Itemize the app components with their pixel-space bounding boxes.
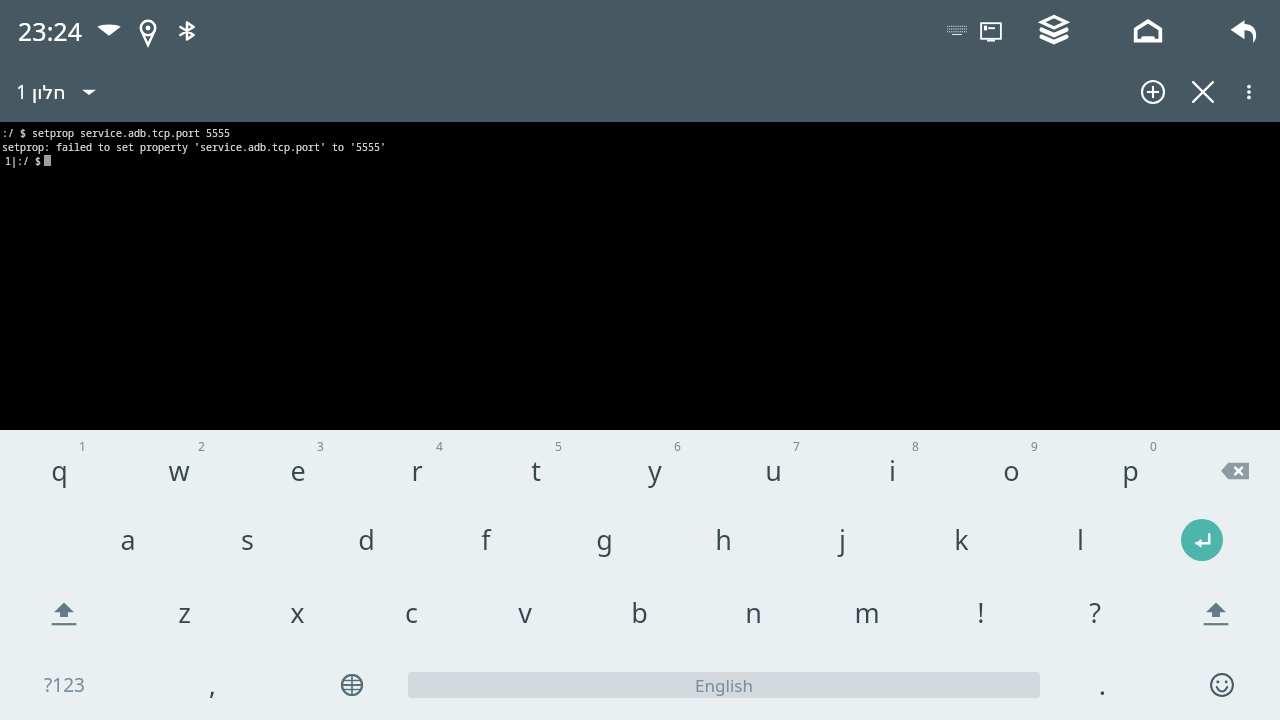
staticText: 5	[555, 438, 562, 454]
staticText: b	[631, 594, 648, 631]
button[interactable]: Bluetooth	[172, 16, 202, 46]
button[interactable]: 7	[714, 430, 833, 503]
staticText: l	[1077, 521, 1084, 558]
staticText: w	[168, 452, 190, 489]
button[interactable]: Change keyboard language	[296, 649, 408, 720]
staticText: v	[518, 594, 532, 631]
button[interactable]: Home	[1126, 9, 1170, 53]
staticText: חלון 1	[16, 79, 66, 105]
staticText: :/ $ setprop service.adb.tcp.port 5555	[2, 126, 230, 140]
button[interactable]: x	[241, 576, 354, 649]
button[interactable]: 4	[357, 430, 476, 503]
staticText: x	[290, 594, 305, 631]
button[interactable]: s	[188, 503, 307, 576]
staticText: .	[1099, 668, 1106, 702]
button[interactable]: Delete	[1190, 430, 1280, 503]
staticText: d	[358, 521, 375, 558]
staticText: y	[648, 452, 662, 489]
button[interactable]: g	[545, 503, 664, 576]
button[interactable]: 2	[119, 430, 238, 503]
staticText: 4	[436, 438, 443, 454]
button[interactable]: !	[924, 576, 1038, 649]
staticText: t	[531, 452, 541, 489]
button[interactable]: d	[307, 503, 426, 576]
staticText: o	[1003, 452, 1020, 489]
button[interactable]: Enter	[1140, 503, 1280, 576]
staticText: 1	[79, 438, 86, 454]
staticText: f	[481, 521, 491, 558]
button[interactable]: חלון 1	[16, 79, 96, 105]
staticText: z	[178, 594, 191, 631]
button[interactable]: ?123	[0, 649, 128, 720]
staticText: 2	[198, 438, 205, 454]
button[interactable]: l	[1021, 503, 1140, 576]
button[interactable]: More options	[1232, 75, 1266, 109]
staticText: p	[1122, 452, 1139, 489]
button[interactable]: 5	[476, 430, 595, 503]
staticText: k	[954, 521, 969, 558]
staticText: 8	[912, 438, 919, 454]
button[interactable]: :/ $ setprop service.adb.tcp.port 5555	[0, 122, 1280, 430]
button[interactable]: v	[468, 576, 582, 649]
button[interactable]: c	[354, 576, 468, 649]
button[interactable]: h	[664, 503, 783, 576]
button[interactable]: z	[128, 576, 241, 649]
button[interactable]: Shift	[0, 576, 128, 649]
staticText: ?	[1089, 594, 1101, 631]
button[interactable]: k	[902, 503, 1021, 576]
staticText: j	[839, 521, 846, 558]
button[interactable]: ,	[128, 649, 296, 720]
button[interactable]: Keyboard	[944, 18, 970, 44]
button[interactable]: 1	[0, 430, 119, 503]
staticText: a	[120, 521, 136, 558]
button[interactable]: Location	[133, 16, 163, 46]
button[interactable]: Recent apps	[1032, 9, 1076, 53]
button[interactable]: Shift	[1152, 576, 1280, 649]
button[interactable]: b	[582, 576, 696, 649]
button[interactable]: n	[696, 576, 810, 649]
staticText: 6	[674, 438, 681, 454]
button[interactable]: f	[426, 503, 545, 576]
button[interactable]: 9	[952, 430, 1071, 503]
button[interactable]: Terminal window	[978, 18, 1004, 44]
staticText: m	[854, 594, 880, 631]
staticText: !	[977, 594, 985, 631]
button[interactable]: 8	[833, 430, 952, 503]
button[interactable]: Back	[1220, 9, 1264, 53]
button[interactable]: 3	[238, 430, 357, 503]
staticText: c	[405, 594, 418, 631]
button[interactable]: New window	[1134, 73, 1172, 111]
button[interactable]: Wi-Fi	[94, 16, 124, 46]
staticText: g	[596, 521, 613, 558]
staticText: i	[889, 452, 896, 489]
button[interactable]: 6	[595, 430, 714, 503]
button[interactable]: English	[408, 649, 1040, 720]
button[interactable]: Emoji	[1164, 649, 1280, 720]
staticText: 9	[1031, 438, 1038, 454]
staticText: 23:24	[18, 14, 82, 48]
button[interactable]: 0	[1071, 430, 1190, 503]
button[interactable]: Close window	[1184, 73, 1222, 111]
button[interactable]: m	[810, 576, 924, 649]
staticText: n	[745, 594, 762, 631]
staticText: q	[51, 452, 68, 489]
staticText: 3	[317, 438, 324, 454]
staticText: u	[765, 452, 782, 489]
staticText: ,	[209, 668, 216, 702]
staticText: 1|:/ $	[2, 154, 44, 168]
staticText: ?123	[44, 672, 85, 698]
staticText: setprop: failed to set property 'service…	[2, 140, 386, 154]
staticText: s	[241, 521, 254, 558]
staticText: h	[715, 521, 732, 558]
button[interactable]: j	[783, 503, 902, 576]
button[interactable]: a	[68, 503, 188, 576]
button[interactable]: .	[1040, 649, 1164, 720]
staticText: 7	[793, 438, 800, 454]
staticText: e	[290, 452, 306, 489]
staticText: r	[411, 452, 423, 489]
button[interactable]: ?	[1038, 576, 1152, 649]
staticText: English	[695, 674, 753, 697]
staticText: 0	[1150, 438, 1157, 454]
